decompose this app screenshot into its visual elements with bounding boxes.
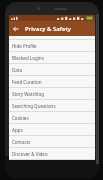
staticText: Data: [12, 67, 22, 73]
button[interactable]: Cookies: [9, 112, 95, 123]
staticText: Apps: [12, 127, 23, 133]
button[interactable]: Blocked Logins: [9, 52, 95, 63]
staticText: Blocked Logins: [12, 55, 44, 61]
staticText: Feed Curation: [12, 79, 42, 85]
staticText: Contacts: [12, 139, 31, 145]
button[interactable]: Feed Curation: [9, 76, 95, 87]
staticText: Privacy & Safety: [25, 25, 71, 33]
staticText: Searching Questions: [12, 103, 56, 109]
staticText: Story Watchlog: [12, 91, 44, 97]
staticText: Hide Profile: [12, 43, 37, 49]
button[interactable]: Story Watchlog: [9, 88, 95, 99]
staticText: Cookies: [12, 115, 29, 121]
button[interactable]: Navigate up: [10, 23, 22, 35]
button[interactable]: Data: [9, 64, 95, 75]
button[interactable]: Hide Profile: [9, 40, 95, 51]
staticText: Discover & Video: [12, 151, 48, 157]
button[interactable]: Discover & Video: [9, 148, 95, 159]
button[interactable]: Searching Questions: [9, 100, 95, 111]
button[interactable]: Apps: [9, 124, 95, 135]
button[interactable]: Contacts: [9, 136, 95, 147]
